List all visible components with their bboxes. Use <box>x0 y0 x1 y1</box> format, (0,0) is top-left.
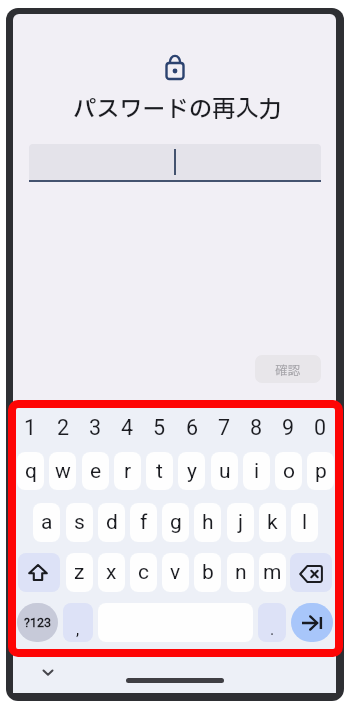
staticText: 2 <box>57 415 70 440</box>
button[interactable]: o <box>275 452 302 490</box>
staticText: x <box>106 560 117 585</box>
staticText: w <box>55 459 71 484</box>
button[interactable] <box>18 553 60 592</box>
button[interactable]: ?123 <box>17 603 58 642</box>
staticText: a <box>41 510 53 535</box>
staticText: パスワードの再入力 <box>73 93 282 121</box>
button[interactable]: k <box>259 503 286 542</box>
button[interactable]: , <box>63 603 93 642</box>
button[interactable]: g <box>162 503 189 542</box>
staticText: e <box>90 459 102 484</box>
button[interactable]: e <box>82 452 109 490</box>
staticText: q <box>25 459 37 484</box>
staticText: u <box>219 459 231 484</box>
staticText: y <box>187 459 197 484</box>
staticText: l <box>302 510 308 535</box>
button[interactable]: t <box>146 452 173 490</box>
button[interactable]: c <box>130 553 157 592</box>
staticText: f <box>140 510 148 535</box>
staticText: j <box>238 510 244 535</box>
staticText: v <box>170 560 181 585</box>
staticText: m <box>263 560 282 585</box>
button[interactable] <box>290 553 332 592</box>
button[interactable]: b <box>194 553 221 592</box>
button[interactable]: 4 <box>111 411 143 443</box>
staticText: i <box>254 459 260 484</box>
staticText: h <box>202 510 214 535</box>
staticText: s <box>74 510 85 535</box>
button[interactable] <box>291 603 333 642</box>
button[interactable]: 9 <box>272 411 304 443</box>
staticText: 8 <box>250 415 263 440</box>
button[interactable]: p <box>307 452 334 490</box>
staticText: , <box>76 620 80 639</box>
button[interactable]: h <box>194 503 221 542</box>
button[interactable]: d <box>98 503 125 542</box>
button[interactable]: 2 <box>47 411 79 443</box>
button[interactable]: 3 <box>79 411 111 443</box>
staticText: 9 <box>282 415 295 440</box>
staticText: d <box>106 510 118 535</box>
staticText: 1 <box>24 415 37 440</box>
staticText: c <box>138 560 149 585</box>
button[interactable]: 7 <box>208 411 240 443</box>
staticText: k <box>267 510 278 535</box>
button[interactable]: f <box>130 503 157 542</box>
button[interactable]: j <box>227 503 254 542</box>
button[interactable]: s <box>66 503 93 542</box>
staticText: t <box>156 459 163 484</box>
button[interactable] <box>29 144 321 180</box>
button[interactable]: q <box>17 452 44 490</box>
button[interactable]: y <box>178 452 205 490</box>
button[interactable]: 8 <box>240 411 272 443</box>
button[interactable]: w <box>49 452 76 490</box>
staticText: 0 <box>314 415 327 440</box>
button[interactable]: 5 <box>143 411 175 443</box>
button[interactable]: l <box>291 503 318 542</box>
button[interactable]: 1 <box>14 411 46 443</box>
staticText: z <box>74 560 85 585</box>
button[interactable]: m <box>259 553 286 592</box>
button[interactable]: z <box>66 553 93 592</box>
button[interactable]: r <box>114 452 141 490</box>
staticText: 7 <box>218 415 231 440</box>
staticText: 5 <box>153 415 166 440</box>
staticText: r <box>124 459 132 484</box>
button[interactable]: 6 <box>176 411 208 443</box>
button[interactable]: x <box>98 553 125 592</box>
staticText: b <box>202 560 214 585</box>
button[interactable]: 0 <box>304 411 336 443</box>
staticText: n <box>235 560 247 585</box>
staticText: g <box>170 510 182 535</box>
staticText: 3 <box>89 415 102 440</box>
button[interactable]: i <box>243 452 270 490</box>
staticText: 確認 <box>275 362 301 381</box>
button[interactable]: n <box>227 553 254 592</box>
staticText: ?123 <box>24 615 51 630</box>
button[interactable]: a <box>33 503 60 542</box>
staticText: 4 <box>121 415 134 440</box>
button[interactable]: 確認 <box>255 355 321 383</box>
button[interactable]: u <box>211 452 238 490</box>
staticText: . <box>270 620 275 639</box>
staticText: 6 <box>186 415 199 440</box>
staticText: p <box>315 459 327 484</box>
button[interactable]: v <box>162 553 189 592</box>
staticText: o <box>283 459 295 484</box>
button[interactable]: . <box>258 603 286 642</box>
